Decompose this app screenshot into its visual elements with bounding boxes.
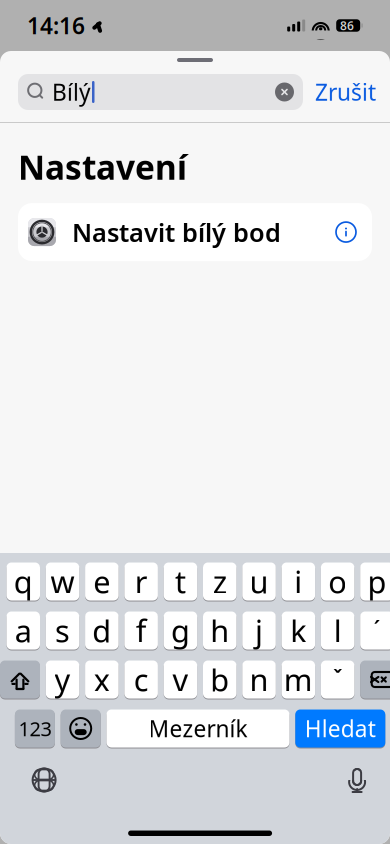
staticText: Nastavení xyxy=(18,145,187,189)
button[interactable]: y xyxy=(46,660,79,699)
staticText: 123 xyxy=(18,715,51,742)
staticText: g xyxy=(171,610,190,651)
button[interactable]: u xyxy=(242,562,276,601)
staticText: l xyxy=(334,610,342,651)
staticText: a xyxy=(15,610,32,651)
staticText: p xyxy=(367,561,386,602)
staticText: j xyxy=(255,610,263,651)
staticText: 86 xyxy=(340,17,354,33)
button[interactable]: a xyxy=(6,611,40,650)
button[interactable]: r xyxy=(124,562,158,601)
staticText: z xyxy=(213,561,227,602)
button[interactable]: ´ xyxy=(360,611,390,650)
button[interactable]: f xyxy=(124,611,158,650)
button[interactable]: o xyxy=(321,562,354,601)
button[interactable]: m xyxy=(282,660,315,699)
button[interactable]: Emodži xyxy=(61,709,101,748)
button[interactable]: Nastavit bílý bod xyxy=(18,203,372,261)
button[interactable]: j xyxy=(242,611,276,650)
button[interactable]: b xyxy=(203,660,236,699)
staticText: e xyxy=(93,561,110,602)
staticText: w xyxy=(50,561,74,602)
staticText: k xyxy=(290,610,306,651)
staticText: Nastavit bílý bod xyxy=(72,215,281,249)
button[interactable]: Hledat xyxy=(295,709,385,748)
button[interactable]: z xyxy=(203,562,236,601)
button[interactable]: x xyxy=(85,660,119,699)
button[interactable]: g xyxy=(164,611,197,650)
staticText: f xyxy=(136,610,147,651)
button[interactable]: Zrušit xyxy=(315,77,376,107)
button[interactable]: s xyxy=(46,611,79,650)
button[interactable]: q xyxy=(6,562,40,601)
button[interactable]: w xyxy=(46,562,79,601)
staticText: h xyxy=(210,610,229,651)
staticText: t xyxy=(175,561,186,602)
staticText: Bílý xyxy=(52,77,91,107)
button[interactable]: p xyxy=(360,562,390,601)
button[interactable]: i xyxy=(282,562,315,601)
staticText: i xyxy=(294,561,302,602)
staticText: r xyxy=(135,561,148,602)
button[interactable]: c xyxy=(124,660,158,699)
button[interactable]: 123 xyxy=(15,709,55,748)
staticText: ´ xyxy=(373,613,380,648)
button[interactable]: Shift xyxy=(0,660,40,699)
staticText: o xyxy=(328,561,347,602)
staticText: 14:16 xyxy=(27,10,85,40)
staticText: u xyxy=(250,561,269,602)
button[interactable]: d xyxy=(85,611,119,650)
staticText: y xyxy=(54,659,70,700)
button[interactable]: Smazat xyxy=(360,660,390,699)
button[interactable]: n xyxy=(242,660,276,699)
button[interactable]: l xyxy=(321,611,354,650)
staticText: q xyxy=(14,561,33,602)
staticText: c xyxy=(134,659,149,700)
button[interactable]: Vymazat text xyxy=(270,77,299,106)
button[interactable]: Další jazyky xyxy=(23,759,65,801)
button[interactable]: h xyxy=(203,611,236,650)
button[interactable]: v xyxy=(164,660,197,699)
staticText: Mezerník xyxy=(148,713,247,743)
button[interactable]: e xyxy=(85,562,119,601)
staticText: ˇ xyxy=(332,662,343,697)
staticText: s xyxy=(55,610,70,651)
button[interactable]: ˇ xyxy=(321,660,354,699)
button[interactable]: k xyxy=(282,611,315,650)
button[interactable]: Diktování xyxy=(337,758,377,802)
staticText: Hledat xyxy=(305,713,376,743)
staticText: d xyxy=(92,610,111,651)
button[interactable]: t xyxy=(164,562,197,601)
staticText: v xyxy=(172,659,188,700)
staticText: Zrušit xyxy=(315,77,376,107)
staticText: x xyxy=(94,659,110,700)
staticText: n xyxy=(250,659,269,700)
button[interactable]: Mezerník xyxy=(106,709,289,748)
staticText: b xyxy=(210,659,229,700)
staticText: m xyxy=(284,659,313,700)
